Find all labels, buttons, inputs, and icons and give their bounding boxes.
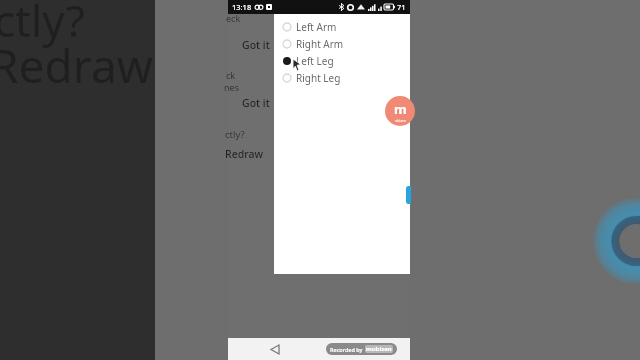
other: Pointer [293, 59, 301, 71]
staticText: ctly? [225, 128, 245, 141]
staticText: Got it [242, 96, 270, 110]
staticText: eck [226, 12, 241, 24]
button[interactable]: Left Arm [282, 18, 410, 35]
staticText: Left Leg [296, 54, 334, 68]
button[interactable]: Mobizen recorder [385, 96, 415, 126]
staticText: Redraw [0, 34, 153, 97]
staticText: 13:18 [232, 2, 252, 12]
staticText: ck [226, 69, 236, 81]
staticText: obizen [395, 118, 406, 123]
button[interactable]: Left Leg [282, 52, 410, 69]
staticText: Left Arm [296, 20, 337, 34]
button[interactable]: Back [264, 338, 286, 360]
button[interactable]: Right Leg [282, 69, 410, 86]
staticText: nes [224, 81, 239, 93]
staticText: ctly? [0, 0, 85, 50]
staticText: m [394, 100, 407, 118]
staticText: Redraw [225, 147, 263, 161]
staticText: 71 [397, 2, 406, 12]
staticText: Right Arm [296, 37, 344, 51]
staticText: Right Leg [296, 71, 341, 85]
button[interactable]: Right Arm [282, 35, 410, 52]
staticText: mobizen [366, 345, 392, 353]
staticText: Recorded by [330, 346, 363, 353]
staticText: Got it [242, 38, 270, 52]
